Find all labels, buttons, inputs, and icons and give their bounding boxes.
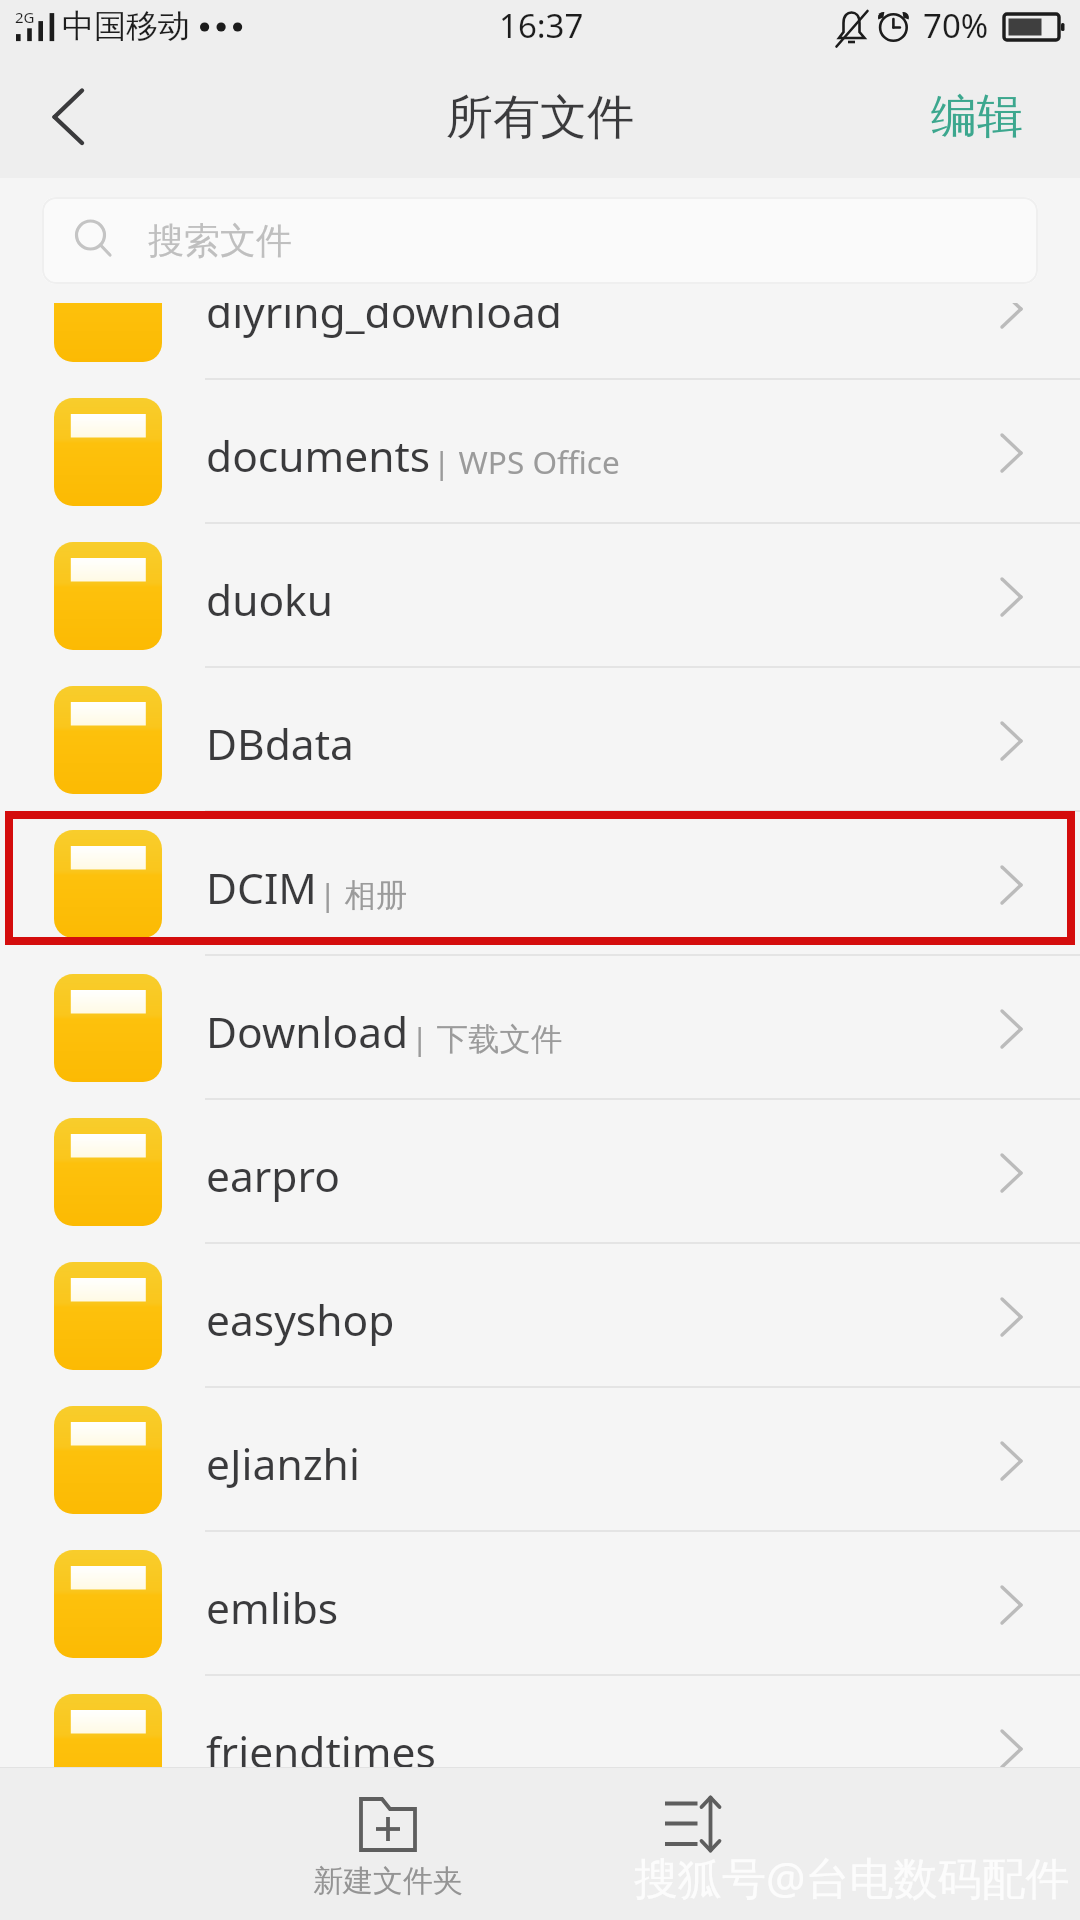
button[interactable]: emlibs bbox=[0, 1532, 1080, 1676]
staticText: | WPS Office bbox=[433, 440, 620, 483]
staticText: 中国移动 bbox=[62, 6, 190, 46]
staticText: DBdata bbox=[206, 715, 354, 773]
button[interactable]: documents bbox=[0, 380, 1080, 524]
staticText: 所有文件 bbox=[446, 88, 634, 147]
staticText: easyshop bbox=[206, 1291, 395, 1349]
button[interactable]: easyshop bbox=[0, 1244, 1080, 1388]
button[interactable]: earpro bbox=[0, 1100, 1080, 1244]
button[interactable]: diyring_download bbox=[0, 303, 1080, 380]
button[interactable]: 新建文件夹 bbox=[259, 1768, 517, 1920]
staticText: 70% bbox=[923, 3, 989, 48]
staticText: 搜索文件 bbox=[148, 218, 292, 263]
staticText: 16:37 bbox=[499, 3, 584, 48]
button[interactable]: Download bbox=[0, 956, 1080, 1100]
staticText: 编辑 bbox=[931, 88, 1023, 146]
staticText: diyring_download bbox=[206, 303, 562, 341]
staticText: DCIM bbox=[206, 859, 317, 917]
staticText: 2G bbox=[15, 7, 35, 27]
staticText: friendtimes bbox=[206, 1723, 436, 1768]
button[interactable]: eJianzhi bbox=[0, 1388, 1080, 1532]
staticText: duoku bbox=[206, 571, 334, 629]
button[interactable]: duoku bbox=[0, 524, 1080, 668]
staticText: 新建文件夹 bbox=[313, 1862, 463, 1900]
staticText: | 相册 bbox=[319, 872, 408, 915]
staticText: emlibs bbox=[206, 1579, 339, 1637]
staticText: | 下载文件 bbox=[411, 1016, 563, 1059]
staticText: Download bbox=[206, 1003, 409, 1061]
button[interactable]: friendtimes bbox=[0, 1676, 1080, 1768]
button[interactable]: Sort bbox=[564, 1768, 822, 1920]
staticText: earpro bbox=[206, 1147, 340, 1205]
staticText: 搜狐号@台电数码配件 bbox=[634, 1847, 1070, 1907]
button[interactable]: Back bbox=[0, 56, 130, 178]
button[interactable]: 搜索文件 bbox=[42, 197, 1038, 284]
button[interactable]: DBdata bbox=[0, 668, 1080, 812]
button[interactable]: 编辑 bbox=[891, 56, 1080, 178]
staticText: eJianzhi bbox=[206, 1435, 360, 1493]
button[interactable]: DCIM bbox=[0, 812, 1080, 956]
staticText: documents bbox=[206, 427, 431, 485]
